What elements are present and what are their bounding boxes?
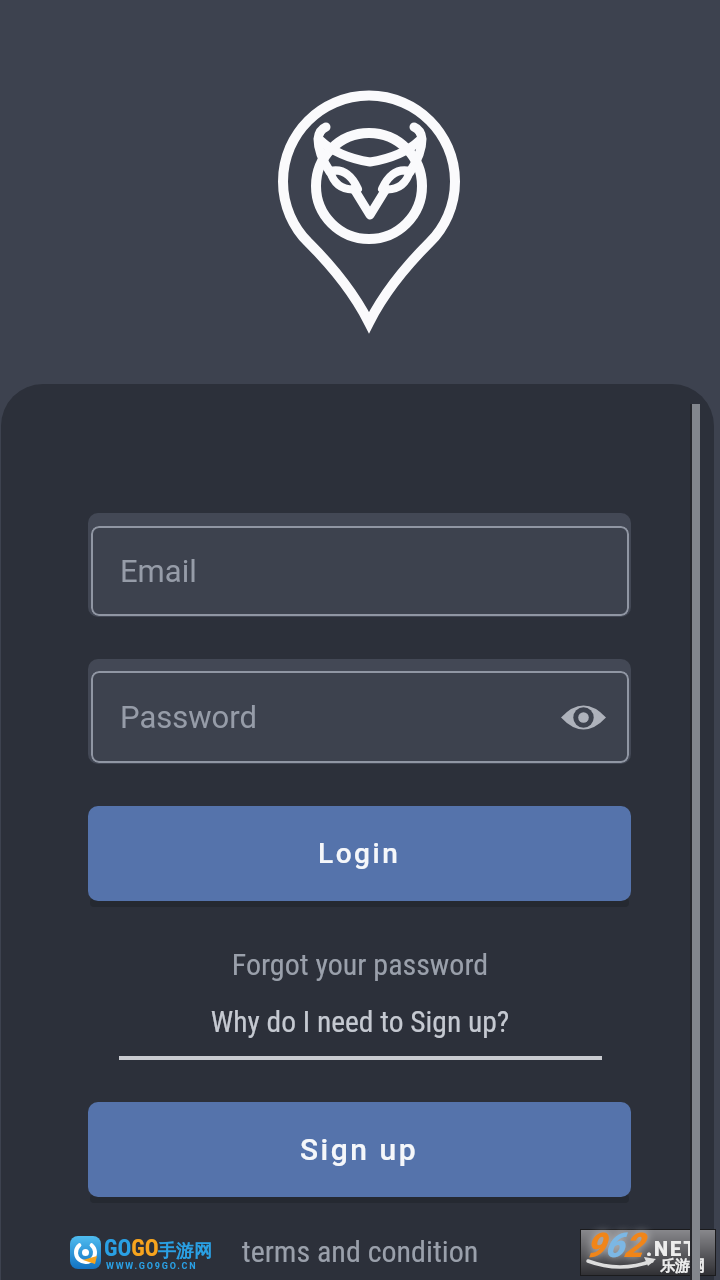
- staticText: 962: [586, 1225, 644, 1265]
- button[interactable]: Login: [88, 806, 631, 901]
- button[interactable]: [561, 702, 606, 733]
- button[interactable]: [88, 513, 631, 617]
- staticText: 乐游网: [660, 1257, 705, 1276]
- button[interactable]: Forgot your password: [0, 947, 720, 982]
- staticText: Sign up: [300, 1132, 419, 1167]
- staticText: Login: [318, 837, 401, 870]
- button[interactable]: terms and condition: [0, 1234, 720, 1269]
- staticText: 手游网: [158, 1240, 212, 1263]
- staticText: Password: [120, 699, 257, 735]
- staticText: .NET: [646, 1237, 699, 1260]
- staticText: WWW.GO9GO.CN: [106, 1261, 198, 1272]
- staticText: Email: [120, 553, 197, 589]
- button[interactable]: [88, 659, 631, 764]
- button[interactable]: Email: [91, 526, 629, 616]
- button[interactable]: Sign up: [88, 1102, 631, 1197]
- button[interactable]: Why do I need to Sign up?: [0, 1005, 720, 1040]
- button[interactable]: Password: [91, 671, 629, 763]
- staticText: GOGO: [104, 1235, 159, 1262]
